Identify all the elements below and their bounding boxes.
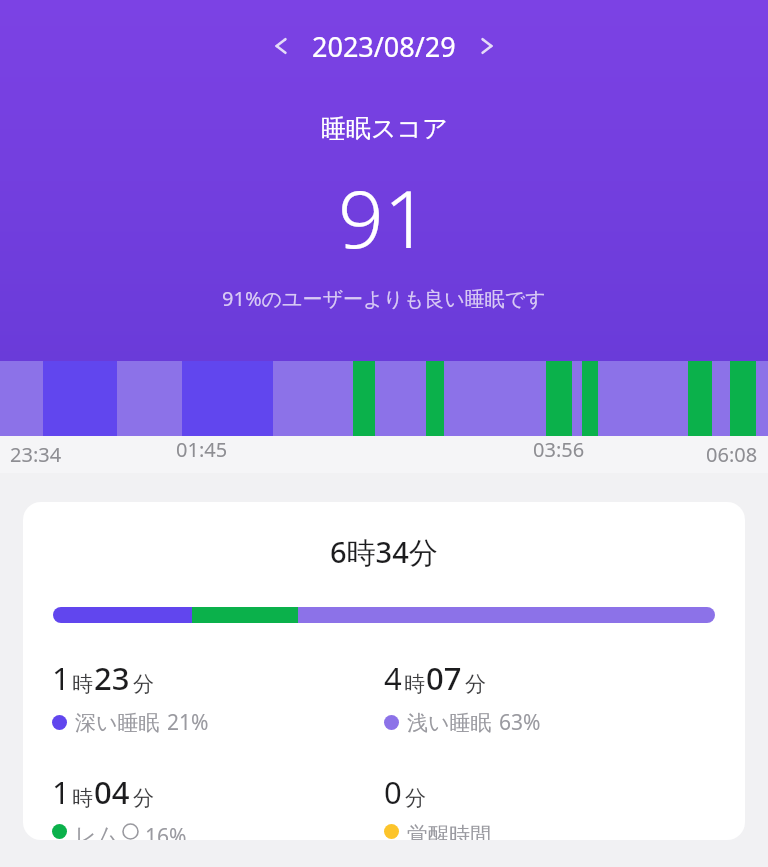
- staticText: 1: [52, 657, 70, 699]
- staticText: 03:56: [533, 436, 585, 463]
- staticText: 01:45: [176, 436, 228, 463]
- button[interactable]: 6時34分: [23, 502, 745, 840]
- staticText: 時: [72, 671, 93, 697]
- staticText: 分: [133, 785, 154, 811]
- button[interactable]: 4: [384, 657, 716, 737]
- staticText: 1: [52, 771, 70, 813]
- staticText: 4: [384, 657, 402, 699]
- button[interactable]: Next day: [464, 23, 510, 69]
- button[interactable]: 1: [52, 657, 384, 737]
- staticText: レム: [75, 822, 118, 840]
- staticText: 時: [72, 785, 93, 811]
- staticText: 0: [384, 771, 402, 813]
- button[interactable]: 1: [52, 771, 384, 840]
- staticText: 06:08: [706, 441, 758, 468]
- staticText: 21%: [167, 708, 209, 737]
- staticText: 16%: [145, 822, 187, 840]
- button[interactable]: 0: [384, 771, 716, 840]
- staticText: 分: [133, 671, 154, 697]
- staticText: 91%のユーザーよりも良い睡眠です: [222, 285, 546, 312]
- staticText: 分: [405, 785, 426, 811]
- staticText: 04: [94, 771, 130, 813]
- staticText: 睡眠スコア: [321, 113, 448, 144]
- staticText: 2023/08/29: [312, 28, 456, 65]
- other: Help about REM sleep: [123, 824, 138, 839]
- staticText: 6時34分: [330, 532, 438, 572]
- button[interactable]: Previous day: [258, 23, 304, 69]
- staticText: 91: [338, 162, 430, 271]
- staticText: 覚醒時間: [407, 822, 491, 840]
- staticText: 時: [404, 671, 425, 697]
- staticText: 深い睡眠: [75, 710, 160, 736]
- staticText: 23:34: [10, 441, 62, 468]
- staticText: 07: [426, 657, 462, 699]
- staticText: 63%: [499, 708, 541, 737]
- staticText: 浅い睡眠: [407, 710, 492, 736]
- staticText: 23: [94, 657, 130, 699]
- staticText: 分: [465, 671, 486, 697]
